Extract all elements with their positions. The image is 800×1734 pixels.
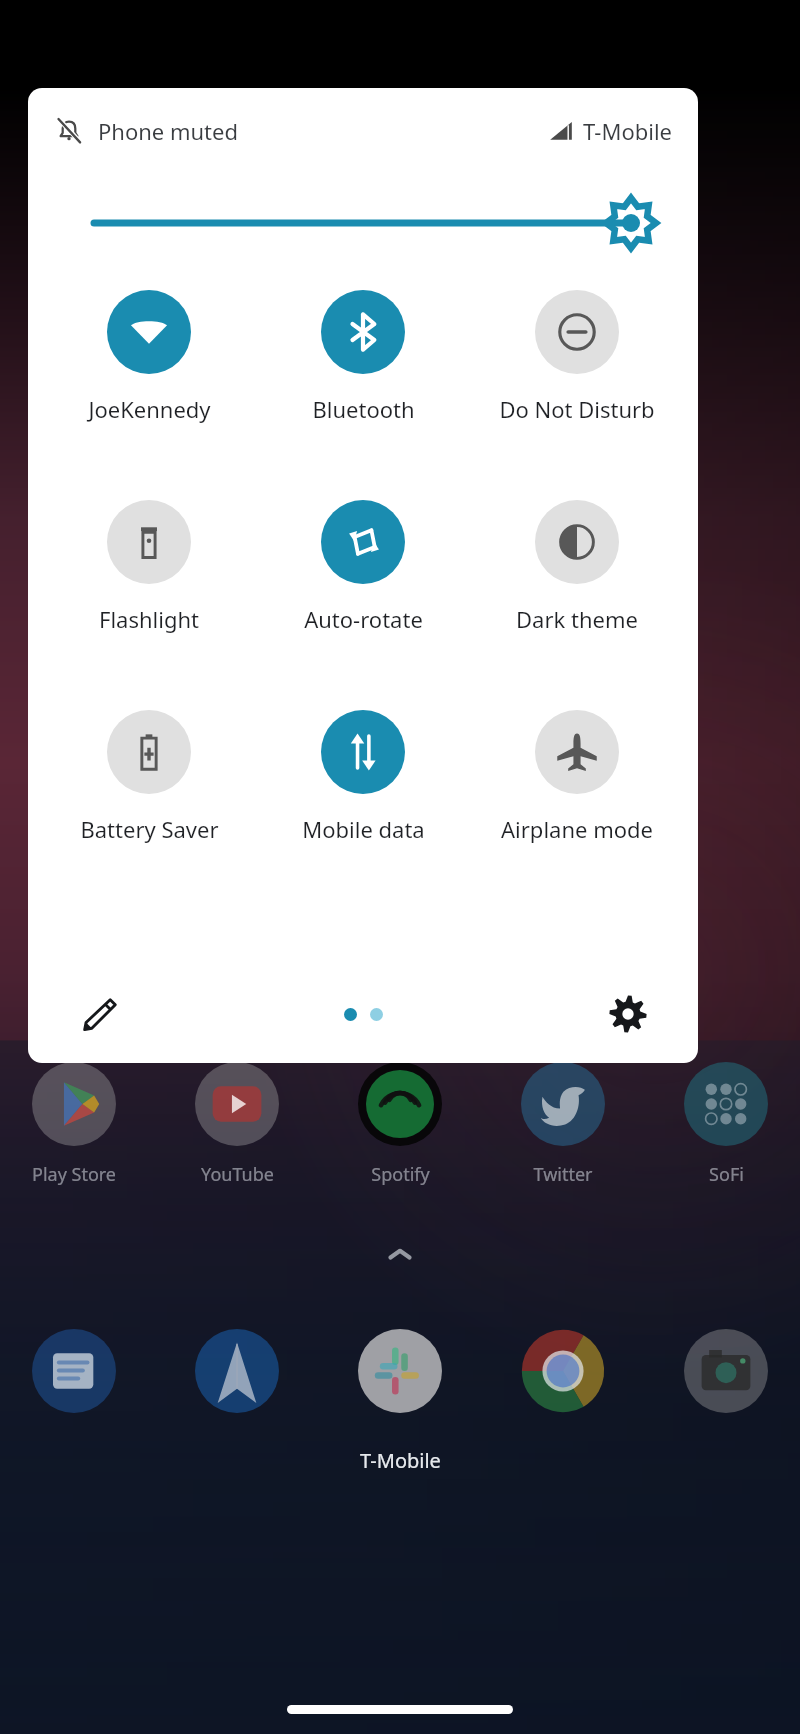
button[interactable]: Phone muted <box>54 116 238 146</box>
staticText: JoeKennedy <box>88 394 211 424</box>
staticText: Do Not Disturb <box>499 394 655 424</box>
staticText: Airplane mode <box>501 814 653 844</box>
staticText: Spotify <box>371 1162 430 1187</box>
button[interactable]: Spotify <box>342 1062 458 1187</box>
staticText: YouTube <box>201 1162 274 1187</box>
staticText: Mobile data <box>302 814 425 844</box>
staticText: Bluetooth <box>312 394 415 424</box>
button[interactable]: Camera <box>668 1329 784 1413</box>
button[interactable]: Flashlight <box>42 500 256 634</box>
button[interactable]: Twitter <box>505 1062 621 1187</box>
button[interactable]: Play Store <box>16 1062 132 1187</box>
staticText: T-Mobile <box>583 116 672 146</box>
button[interactable]: T-Mobile <box>549 116 672 146</box>
button[interactable]: Auto-rotate <box>256 500 470 634</box>
staticText: Dark theme <box>516 604 638 634</box>
button[interactable]: Airplane mode <box>470 710 684 844</box>
button[interactable]: Edit tiles <box>72 986 128 1042</box>
button[interactable]: Mobile data <box>256 710 470 844</box>
button[interactable]: Spark <box>179 1329 295 1413</box>
button[interactable]: Slack <box>342 1329 458 1413</box>
button[interactable]: Messages <box>16 1329 132 1413</box>
button[interactable]: SoFi <box>668 1062 784 1187</box>
staticText: Twitter <box>533 1162 593 1187</box>
button[interactable]: JoeKennedy <box>42 290 256 424</box>
staticText: Battery Saver <box>80 814 219 844</box>
button[interactable]: Chrome <box>505 1329 621 1413</box>
staticText: Phone muted <box>98 116 238 146</box>
button[interactable]: Battery Saver <box>42 710 256 844</box>
staticText: T-Mobile <box>360 1447 441 1474</box>
staticText: Flashlight <box>99 604 199 634</box>
button[interactable]: Brightness <box>94 200 656 246</box>
button[interactable]: Do Not Disturb <box>470 290 684 424</box>
staticText: Play Store <box>32 1162 116 1187</box>
button[interactable]: Settings <box>600 986 656 1042</box>
button[interactable]: Open app drawer <box>377 1231 423 1277</box>
button[interactable]: YouTube <box>179 1062 295 1187</box>
button[interactable]: Bluetooth <box>256 290 470 424</box>
button[interactable]: Dark theme <box>470 500 684 634</box>
staticText: Auto-rotate <box>304 604 423 634</box>
staticText: SoFi <box>709 1162 744 1187</box>
